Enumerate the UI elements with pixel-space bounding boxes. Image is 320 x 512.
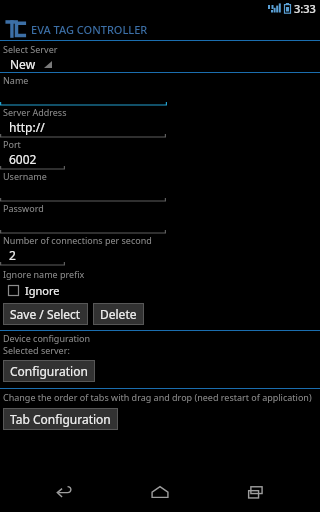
staticText: Port: [3, 138, 21, 150]
button[interactable]: Save / Select: [3, 303, 88, 325]
button[interactable]: Tab Configuration: [3, 408, 118, 430]
staticText: Configuration: [10, 363, 88, 379]
staticText: Tab Configuration: [10, 411, 111, 427]
staticText: Save / Select: [10, 306, 81, 322]
button[interactable]: Delete: [93, 303, 144, 325]
staticText: Username: [3, 170, 47, 182]
staticText: New: [10, 56, 36, 72]
button[interactable]: Recent apps: [225, 472, 287, 512]
staticText: 3:33: [294, 1, 316, 16]
staticText: Ignore: [25, 283, 60, 298]
button[interactable]: [0, 214, 320, 234]
button[interactable]: Home: [129, 472, 191, 512]
staticText: Device configuration: [3, 332, 91, 344]
staticText: Change the order of tabs with drag and d…: [3, 391, 312, 403]
staticText: 2: [9, 247, 16, 263]
staticText: Ignore name prefix: [3, 268, 85, 280]
button[interactable]: 2: [0, 246, 320, 266]
button[interactable]: Ignore: [8, 283, 60, 298]
staticText: 6002: [9, 151, 37, 167]
staticText: http://: [9, 119, 45, 135]
staticText: EVA TAG CONTROLLER: [31, 22, 148, 37]
staticText: Delete: [100, 306, 137, 322]
button[interactable]: New: [0, 55, 320, 72]
staticText: Select Server: [3, 43, 58, 55]
button[interactable]: [0, 182, 320, 202]
button[interactable]: Back: [33, 472, 95, 512]
button[interactable]: http://: [0, 118, 320, 138]
staticText: Selected server:: [3, 344, 70, 356]
staticText: Server Address: [3, 106, 67, 118]
button[interactable]: 6002: [0, 150, 320, 170]
button[interactable]: [0, 86, 320, 106]
button[interactable]: Configuration: [3, 360, 95, 382]
staticText: Password: [3, 202, 44, 214]
staticText: Name: [3, 74, 29, 86]
staticText: Number of connections per second: [3, 234, 152, 246]
